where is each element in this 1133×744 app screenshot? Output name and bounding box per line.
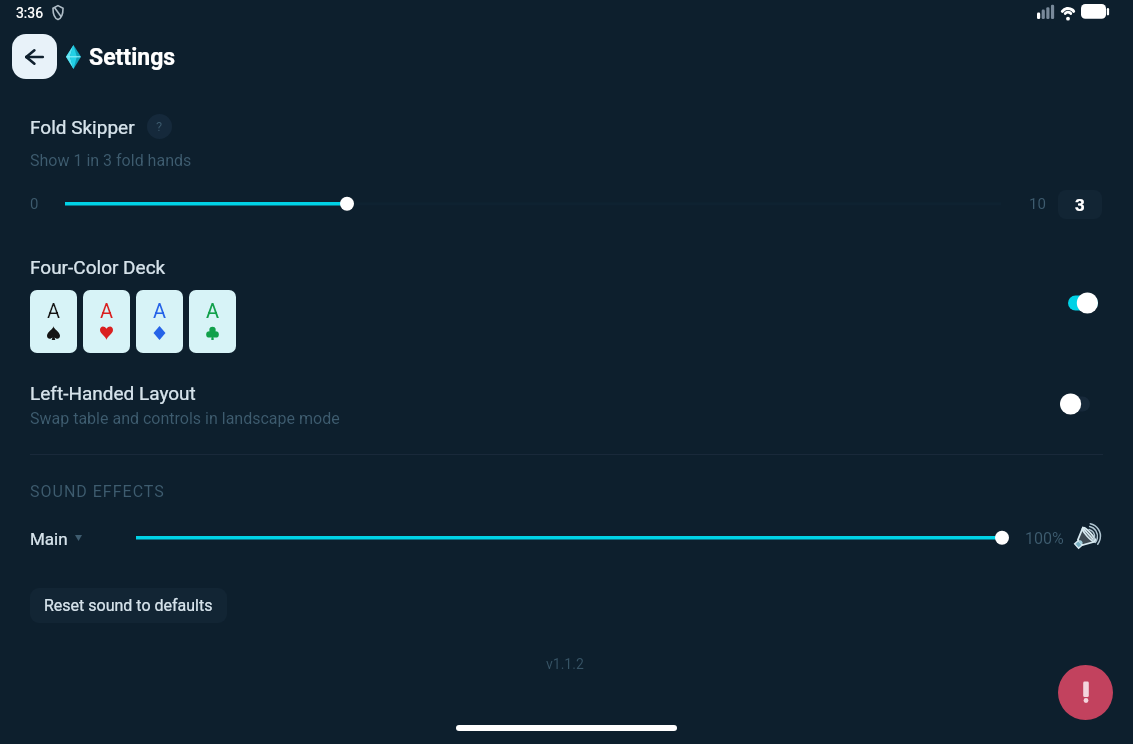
staticText: SOUND EFFECTS — [30, 482, 165, 501]
button[interactable]: Enabled — [1068, 292, 1100, 314]
staticText: Settings — [89, 44, 176, 71]
staticText: Swap table and controls in landscape mod… — [30, 409, 340, 428]
button[interactable]: Fold skipper level — [55, 192, 1011, 216]
staticText: v1.1.2 — [546, 656, 584, 672]
button[interactable]: Disabled — [1060, 393, 1092, 415]
staticText: 100% — [1025, 529, 1064, 548]
button[interactable]: Mute sound — [1073, 525, 1101, 553]
button[interactable]: Ace card sample — [83, 290, 130, 353]
button[interactable]: Report a problem — [1058, 665, 1113, 720]
other: VPN active — [52, 5, 64, 20]
button[interactable]: Help about fold skipper — [147, 114, 172, 139]
button[interactable]: Ace card sample — [136, 290, 183, 353]
staticText: A — [206, 299, 220, 322]
button[interactable]: Main volume — [126, 526, 1021, 550]
staticText: A — [153, 299, 167, 322]
button[interactable]: Ace card sample — [30, 290, 77, 353]
staticText: Four-Color Deck — [30, 256, 166, 278]
staticText: Fold Skipper — [30, 116, 135, 138]
staticText: A — [100, 299, 114, 322]
staticText: 10 — [1029, 195, 1046, 213]
button[interactable]: Back — [12, 34, 57, 79]
button[interactable]: Reset sound to defaults — [30, 588, 227, 623]
staticText: A — [47, 299, 61, 322]
staticText: Show 1 in 3 fold hands — [30, 151, 192, 170]
staticText: Main — [30, 529, 68, 549]
staticText: Left-Handed Layout — [30, 382, 196, 404]
button[interactable]: 3 — [1058, 190, 1102, 219]
staticText: ? — [156, 119, 163, 134]
staticText: 0 — [30, 195, 39, 213]
staticText: 3 — [1075, 195, 1085, 215]
staticText: 3:36 — [16, 5, 43, 21]
button[interactable]: Ace card sample — [189, 290, 236, 353]
staticText: Reset sound to defaults — [44, 596, 213, 615]
